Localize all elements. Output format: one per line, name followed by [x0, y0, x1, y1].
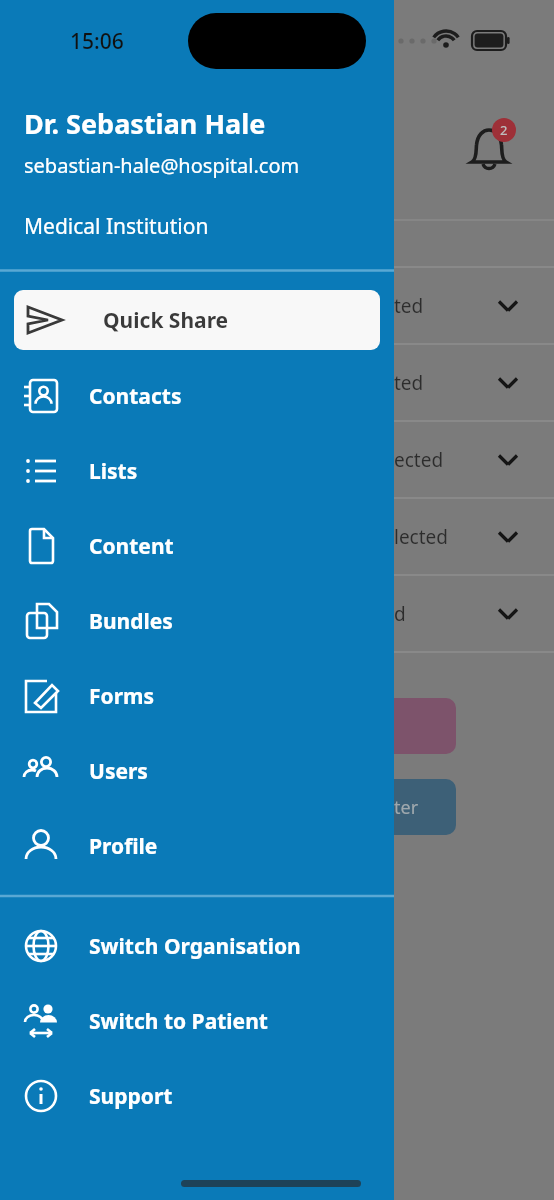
staticText: Switch to Patient: [89, 1007, 268, 1036]
button[interactable]: lected: [394, 498, 554, 575]
button[interactable]: Lists: [0, 441, 394, 501]
button[interactable]: Profile: [0, 816, 394, 876]
button[interactable]: Users: [0, 741, 394, 801]
button[interactable]: Contacts: [0, 366, 394, 426]
staticText: Medical Institution: [24, 212, 209, 241]
staticText: Forms: [89, 682, 155, 711]
staticText: Lists: [89, 457, 138, 486]
button[interactable]: Support: [0, 1066, 394, 1126]
staticText: 2: [500, 121, 508, 139]
staticText: Bundles: [89, 607, 173, 636]
button[interactable]: Quick Share: [14, 290, 380, 350]
staticText: lected: [394, 524, 448, 550]
button[interactable]: ted: [394, 267, 554, 344]
staticText: Quick Share: [103, 306, 229, 335]
button[interactable]: ter: [394, 779, 456, 835]
button[interactable]: Notifications: [462, 118, 518, 174]
staticText: Users: [89, 757, 148, 786]
staticText: ted: [394, 293, 424, 319]
button[interactable]: ected: [394, 421, 554, 498]
staticText: 15:06: [70, 27, 124, 56]
button[interactable]: Switch to Patient: [0, 991, 394, 1051]
staticText: ected: [394, 447, 444, 473]
staticText: ter: [394, 795, 419, 820]
staticText: Support: [89, 1082, 173, 1111]
button[interactable]: Switch Organisation: [0, 916, 394, 976]
button[interactable]: d: [394, 575, 554, 652]
staticText: sebastian-hale@hospital.com: [24, 152, 300, 179]
staticText: Contacts: [89, 382, 182, 411]
staticText: Content: [89, 532, 174, 561]
button[interactable]: Content: [0, 516, 394, 576]
button[interactable]: Action: [394, 698, 456, 754]
staticText: Switch Organisation: [89, 932, 301, 961]
staticText: Dr. Sebastian Hale: [24, 105, 266, 142]
button[interactable]: ted: [394, 344, 554, 421]
staticText: d: [394, 601, 406, 627]
staticText: Profile: [89, 832, 158, 861]
button[interactable]: Bundles: [0, 591, 394, 651]
staticText: ted: [394, 370, 424, 396]
button[interactable]: Forms: [0, 666, 394, 726]
